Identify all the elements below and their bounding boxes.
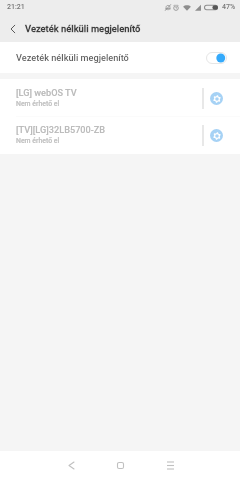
staticText: Vezeték nélküli megjelenítő (25, 23, 141, 34)
button[interactable]: Wireless display on (206, 52, 227, 64)
staticText: Nem érhető el (16, 137, 60, 145)
button[interactable]: Vezeték nélküli megjelenítő (0, 42, 240, 73)
button[interactable]: Device settings (210, 129, 223, 142)
staticText: Vezeték nélküli megjelenítő (16, 52, 129, 63)
staticText: [LG] webOS TV (16, 87, 77, 98)
staticText: Nem érhető el (16, 100, 60, 108)
button[interactable]: [LG] webOS TV (0, 79, 240, 117)
staticText: 47% (222, 3, 236, 11)
button[interactable]: Recent apps (156, 451, 184, 479)
button[interactable]: Device settings (210, 92, 223, 105)
button[interactable]: Home (106, 451, 134, 479)
staticText: [TV][LG]32LB5700-ZB (16, 124, 106, 135)
button[interactable]: Back (0, 16, 25, 41)
button[interactable]: [TV][LG]32LB5700-ZB (0, 117, 240, 154)
button[interactable]: Back (57, 451, 85, 479)
staticText: 21:21 (7, 3, 25, 11)
